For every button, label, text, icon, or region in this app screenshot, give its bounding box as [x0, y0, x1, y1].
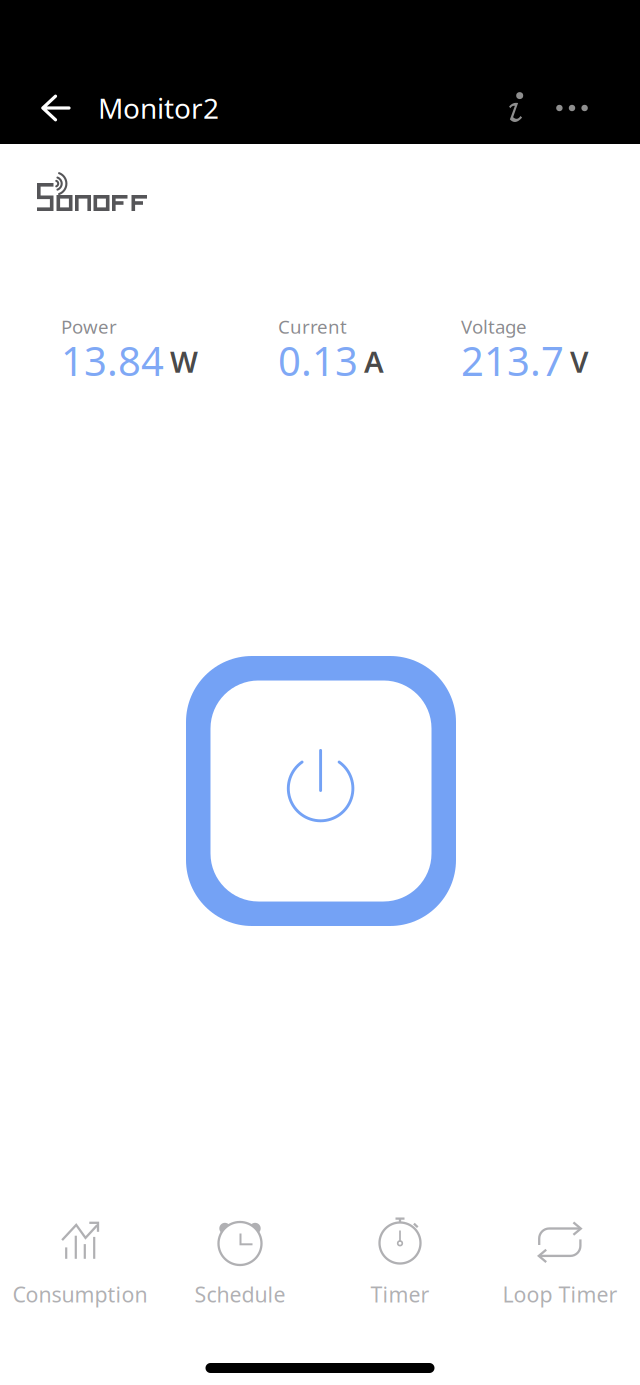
staticText: W: [170, 342, 198, 381]
staticText: 213.7: [461, 334, 564, 387]
staticText: 13.84: [61, 334, 164, 387]
staticText: V: [570, 342, 589, 381]
staticText: A: [364, 342, 384, 381]
staticText: Current: [278, 314, 347, 339]
button[interactable]: Back: [27, 81, 85, 135]
staticText: Monitor2: [98, 89, 219, 127]
staticText: Consumption: [12, 1280, 147, 1308]
button[interactable]: Consumption: [0, 1220, 160, 1320]
button[interactable]: Device information: [494, 84, 539, 132]
button[interactable]: Schedule: [160, 1220, 320, 1320]
staticText: Voltage: [461, 314, 527, 339]
button[interactable]: Monitor2: [98, 86, 228, 130]
staticText: Schedule: [194, 1280, 285, 1308]
button[interactable]: Power: [186, 656, 456, 926]
button[interactable]: More options: [548, 88, 596, 128]
staticText: Loop Timer: [502, 1280, 617, 1308]
staticText: Timer: [370, 1280, 429, 1308]
button[interactable]: Loop Timer: [480, 1220, 640, 1320]
staticText: 0.13: [278, 334, 358, 387]
staticText: Power: [61, 314, 117, 339]
button[interactable]: Timer: [320, 1220, 480, 1320]
